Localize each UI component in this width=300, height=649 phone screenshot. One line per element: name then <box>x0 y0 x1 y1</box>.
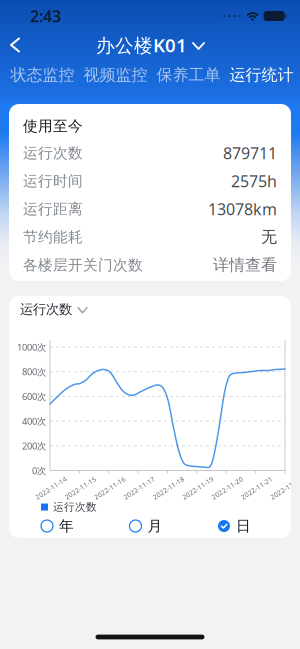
staticText: 600次 <box>22 390 46 403</box>
staticText: 运行统计 <box>229 65 293 85</box>
staticText: 使用至今 <box>23 117 83 135</box>
staticText: 800次 <box>22 365 46 378</box>
staticText: 0次 <box>32 464 46 477</box>
staticText: 2022-11-20 <box>209 484 245 492</box>
staticText: 2022-11-17 <box>121 484 157 492</box>
staticText: 13078km <box>208 198 277 220</box>
staticText: 2022-11-19 <box>180 484 216 492</box>
staticText: 2022-11-18 <box>150 484 186 492</box>
staticText: 状态监控 <box>10 65 74 85</box>
button[interactable]: 运行次数 <box>9 296 87 317</box>
staticText: 879711 <box>223 142 277 164</box>
button[interactable]: 日 <box>218 517 251 535</box>
staticText: 运行次数 <box>20 301 72 317</box>
staticText: 2022-11-15 <box>62 484 98 492</box>
staticText: 运行距离 <box>23 200 83 218</box>
staticText: 无 <box>261 227 277 247</box>
staticText: 运行次数 <box>23 144 83 162</box>
staticText: 详情查看 <box>213 255 277 275</box>
staticText: 保养工单 <box>156 65 220 85</box>
staticText: 运行时间 <box>23 172 83 190</box>
button[interactable]: 办公楼K01 <box>96 33 204 57</box>
staticText: 月 <box>147 517 162 535</box>
button[interactable]: 视频监控 <box>79 65 152 85</box>
button[interactable]: 保养工单 <box>152 65 225 85</box>
staticText: 2022-11-21 <box>239 484 275 492</box>
staticText: 400次 <box>22 415 46 427</box>
staticText: 200次 <box>22 440 46 452</box>
button[interactable]: 各楼层开关门次数 <box>23 251 277 279</box>
staticText: 节约能耗 <box>23 228 83 246</box>
staticText: 2022-11-22 <box>268 484 300 492</box>
staticText: 办公楼K01 <box>96 33 187 57</box>
staticText: 运行次数 <box>53 500 97 514</box>
staticText: 2575h <box>231 170 277 192</box>
button[interactable]: 运行统计 <box>225 65 298 85</box>
staticText: 各楼层开关门次数 <box>23 256 143 274</box>
staticText: 2022-11-14 <box>33 484 69 492</box>
staticText: 视频监控 <box>83 65 147 85</box>
staticText: 2:43 <box>30 5 61 27</box>
button[interactable]: 状态监控 <box>6 65 79 85</box>
staticText: 年 <box>59 517 74 535</box>
staticText: 日 <box>236 517 251 535</box>
button[interactable]: Back <box>0 32 19 57</box>
button[interactable]: 月 <box>129 517 162 535</box>
staticText: 2022-11-16 <box>92 484 128 492</box>
button[interactable]: 年 <box>41 517 74 535</box>
staticText: 1000次 <box>17 341 46 353</box>
